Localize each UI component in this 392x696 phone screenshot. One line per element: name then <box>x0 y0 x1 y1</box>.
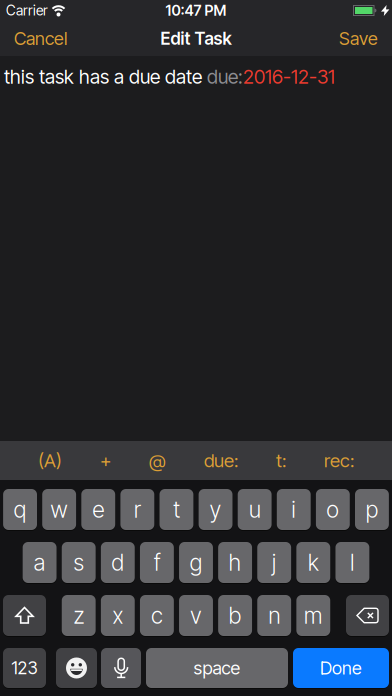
button[interactable]: Shift <box>3 595 46 636</box>
button[interactable]: u <box>238 489 272 530</box>
staticText: l <box>350 549 355 576</box>
staticText: z <box>73 602 84 629</box>
staticText: u <box>249 496 261 523</box>
button[interactable]: due: <box>204 449 238 472</box>
button[interactable]: Dictation <box>101 648 141 688</box>
staticText: r <box>134 496 141 523</box>
button[interactable]: h <box>218 542 252 583</box>
button[interactable]: t <box>159 489 193 530</box>
button[interactable]: d <box>101 542 135 583</box>
staticText: g <box>189 549 202 576</box>
staticText: p <box>365 496 378 523</box>
button[interactable]: f <box>140 542 174 583</box>
staticText: c <box>151 602 163 629</box>
button[interactable]: z <box>62 595 96 636</box>
button[interactable]: @ <box>149 449 166 472</box>
button[interactable]: (A) <box>38 449 62 472</box>
staticText: y <box>210 496 222 523</box>
button[interactable]: a <box>23 542 57 583</box>
staticText: n <box>268 602 280 629</box>
staticText: Done <box>320 657 362 679</box>
button[interactable]: Cancel <box>14 28 67 49</box>
staticText: w <box>50 496 68 523</box>
button[interactable]: 123 <box>3 648 46 688</box>
button[interactable]: p <box>355 489 389 530</box>
staticText: Edit Task <box>160 28 231 49</box>
button[interactable]: v <box>179 595 213 636</box>
staticText: b <box>229 602 242 629</box>
staticText: v <box>190 602 202 629</box>
staticText: this task has a due date <box>4 65 207 88</box>
button[interactable]: s <box>62 542 96 583</box>
staticText: f <box>153 549 160 576</box>
staticText: s <box>73 549 84 576</box>
staticText: 2016-12-31 <box>243 65 335 88</box>
button[interactable]: j <box>257 542 291 583</box>
button[interactable]: o <box>316 489 350 530</box>
staticText: Cancel <box>14 28 67 49</box>
staticText: h <box>229 549 242 576</box>
button[interactable]: i <box>277 489 311 530</box>
staticText: i <box>291 496 296 523</box>
button[interactable]: + <box>100 449 111 472</box>
staticText: due: <box>207 65 243 88</box>
staticText: t <box>173 496 180 523</box>
staticText: + <box>100 449 111 472</box>
button[interactable]: y <box>199 489 232 530</box>
button[interactable]: m <box>296 595 330 636</box>
button[interactable]: k <box>296 542 330 583</box>
button[interactable]: space <box>146 648 288 688</box>
button[interactable]: g <box>179 542 213 583</box>
staticText: a <box>34 549 46 576</box>
staticText: (A) <box>38 449 62 472</box>
button[interactable]: b <box>218 595 252 636</box>
staticText: Save <box>339 28 378 49</box>
staticText: q <box>14 496 27 523</box>
button[interactable]: Delete <box>346 595 389 636</box>
button[interactable]: l <box>335 542 369 583</box>
staticText: t: <box>276 449 286 472</box>
button[interactable]: rec: <box>324 449 354 472</box>
button[interactable]: n <box>257 595 291 636</box>
button[interactable]: Emoji <box>56 648 97 688</box>
button[interactable]: Done <box>293 648 389 688</box>
button[interactable]: x <box>101 595 135 636</box>
staticText: d <box>111 549 124 576</box>
button[interactable]: e <box>81 489 115 530</box>
staticText: o <box>326 496 339 523</box>
staticText: k <box>308 549 319 576</box>
button[interactable]: r <box>120 489 154 530</box>
staticText: due: <box>204 449 238 472</box>
staticText: space <box>193 657 240 679</box>
staticText: rec: <box>324 449 354 472</box>
staticText: 123 <box>11 657 37 678</box>
staticText: j <box>272 549 277 576</box>
staticText: @ <box>149 449 166 472</box>
button[interactable]: t: <box>276 449 286 472</box>
staticText: e <box>92 496 104 523</box>
staticText: x <box>112 602 123 629</box>
staticText: 10:47 PM <box>165 2 226 19</box>
button[interactable]: Save <box>339 28 378 49</box>
button[interactable]: w <box>42 489 76 530</box>
button[interactable]: q <box>3 489 37 530</box>
staticText: m <box>304 602 323 629</box>
button[interactable]: c <box>140 595 174 636</box>
staticText: Carrier <box>6 2 48 19</box>
